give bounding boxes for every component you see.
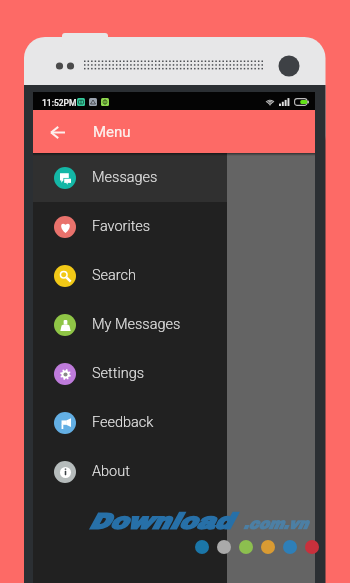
staticText: My Messages (92, 316, 181, 333)
staticText: Favorites (92, 218, 151, 235)
button[interactable]: Favorites (33, 202, 227, 251)
staticText: Search (92, 267, 137, 284)
button[interactable]: Messages (33, 153, 227, 202)
button[interactable]: Search (33, 251, 227, 300)
button[interactable]: Back (43, 118, 71, 146)
button[interactable]: About (33, 447, 227, 496)
staticText: Menu (93, 123, 131, 141)
button[interactable]: Feedback (33, 398, 227, 447)
staticText: Messages (92, 169, 158, 186)
staticText: Feedback (92, 414, 154, 431)
button[interactable]: My Messages (33, 300, 227, 349)
button[interactable]: Settings (33, 349, 227, 398)
staticText: Settings (92, 365, 145, 382)
staticText: 11:52PM (42, 98, 77, 108)
staticText: About (92, 463, 130, 480)
staticText: .com.vn (243, 516, 308, 532)
staticText: Download (88, 510, 232, 534)
